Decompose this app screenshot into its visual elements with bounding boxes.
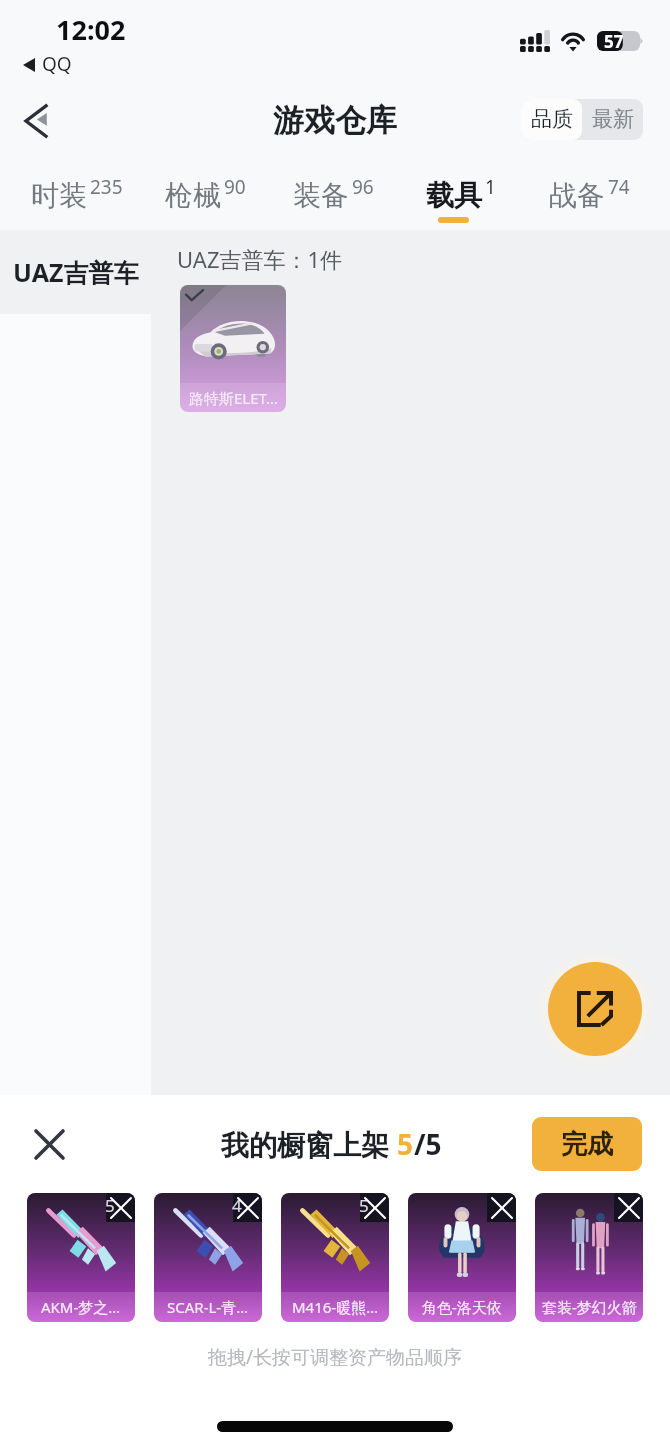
- staticText: 5: [397, 1125, 414, 1163]
- staticText: QQ: [42, 51, 72, 77]
- staticText: 套装-梦幻火箭: [542, 1297, 637, 1317]
- staticText: 5: [359, 1194, 369, 1217]
- button[interactable]: Remove: [487, 1193, 516, 1222]
- button[interactable]: AKM-梦之…: [27, 1193, 135, 1322]
- staticText: AKM-梦之…: [41, 1297, 121, 1317]
- staticText: UAZ吉普车: [13, 255, 139, 289]
- staticText: 装备: [293, 178, 349, 213]
- staticText: M416-暖熊…: [292, 1297, 379, 1317]
- button[interactable]: 战备: [520, 158, 648, 230]
- staticText: 4: [232, 1194, 242, 1217]
- staticText: 战备: [549, 178, 605, 213]
- button[interactable]: 品质: [521, 99, 582, 140]
- staticText: 路特斯ELET…: [189, 388, 278, 408]
- staticText: 90: [224, 174, 246, 200]
- staticText: 96: [352, 174, 374, 200]
- staticText: 235: [90, 174, 123, 200]
- staticText: 时装: [31, 178, 87, 213]
- button[interactable]: 角色-洛天依: [408, 1193, 516, 1322]
- staticText: SCAR-L-青…: [167, 1297, 249, 1317]
- staticText: 74: [608, 174, 630, 200]
- button[interactable]: Remove: [233, 1193, 262, 1222]
- staticText: 1: [485, 174, 496, 200]
- button[interactable]: 最新: [582, 99, 643, 140]
- button[interactable]: 装备: [264, 158, 392, 230]
- button[interactable]: Remove: [106, 1193, 135, 1222]
- staticText: 完成: [561, 1128, 613, 1161]
- staticText: /5: [414, 1125, 442, 1163]
- staticText: 游戏仓库: [273, 101, 397, 140]
- staticText: 我的橱窗上架: [221, 1125, 397, 1163]
- staticText: 枪械: [165, 178, 221, 213]
- button[interactable]: Share: [548, 962, 642, 1056]
- staticText: 最新: [592, 106, 634, 132]
- staticText: 角色-洛天依: [422, 1297, 502, 1317]
- button[interactable]: 载具: [392, 158, 520, 230]
- button[interactable]: M416-暖熊…: [281, 1193, 389, 1322]
- staticText: 品质: [531, 106, 573, 132]
- staticText: 5: [105, 1194, 115, 1217]
- staticText: UAZ吉普车：1件: [177, 244, 343, 274]
- button[interactable]: 套装-梦幻火箭: [535, 1193, 643, 1322]
- button[interactable]: Back: [11, 94, 65, 148]
- staticText: 拖拽/长按可调整资产物品顺序: [0, 1344, 670, 1370]
- staticText: 载具: [426, 178, 482, 213]
- button[interactable]: Remove: [614, 1193, 643, 1222]
- staticText: 57: [604, 30, 624, 50]
- button[interactable]: 路特斯ELET…: [180, 285, 286, 412]
- staticText: 12:02: [56, 11, 126, 48]
- button[interactable]: Remove: [360, 1193, 389, 1222]
- button[interactable]: UAZ吉普车: [0, 230, 151, 314]
- button[interactable]: 枪械: [136, 158, 264, 230]
- button[interactable]: 时装: [8, 158, 136, 230]
- button[interactable]: Close: [20, 1115, 78, 1173]
- button[interactable]: 完成: [532, 1117, 642, 1171]
- button[interactable]: SCAR-L-青…: [154, 1193, 262, 1322]
